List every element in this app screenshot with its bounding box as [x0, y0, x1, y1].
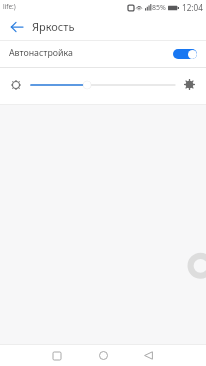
- button[interactable]: Back: [136, 344, 160, 366]
- staticText: life:): [3, 2, 16, 11]
- staticText: Яркость: [32, 19, 75, 34]
- staticText: 85%: [152, 3, 166, 13]
- button[interactable]: Home: [91, 344, 115, 366]
- staticText: 12:04: [182, 2, 203, 13]
- button[interactable]: Автонастройка: [0, 40, 206, 68]
- button[interactable]: Back: [5, 13, 28, 41]
- staticText: Автонастройка: [9, 47, 73, 59]
- button[interactable]: Recent apps: [45, 345, 69, 366]
- button[interactable]: Assistant bubble: [187, 252, 206, 280]
